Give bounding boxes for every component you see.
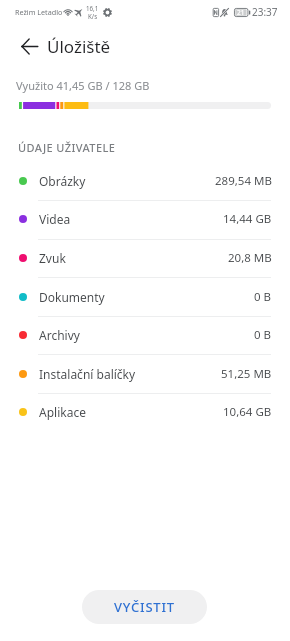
button[interactable]: Aplikace: [0, 392, 290, 431]
button[interactable]: Instalační balíčky: [0, 354, 290, 393]
button[interactable]: VYČISTIT: [82, 590, 207, 624]
staticText: Využito 41,45 GB / 128 GB: [16, 78, 150, 93]
staticText: Obrázky: [39, 173, 86, 189]
staticText: 289,54 MB: [215, 173, 272, 189]
button[interactable]: Videa: [0, 199, 290, 238]
staticText: K/s: [88, 12, 98, 20]
staticText: ÚDAJE UŽIVATELE: [18, 140, 116, 155]
staticText: Archivy: [39, 327, 80, 343]
staticText: Instalační balíčky: [39, 366, 136, 382]
staticText: 20,8 MB: [228, 250, 272, 266]
button[interactable]: Dokumenty: [0, 277, 290, 316]
staticText: Aplikace: [39, 404, 86, 420]
staticText: Dokumenty: [39, 289, 105, 305]
button[interactable]: Back: [17, 34, 41, 58]
staticText: Úložiště: [47, 35, 111, 58]
button[interactable]: Archivy: [0, 315, 290, 354]
staticText: 0 B: [254, 289, 272, 305]
staticText: 10,64 GB: [223, 404, 272, 420]
staticText: Zvuk: [39, 250, 66, 266]
staticText: 51,25 MB: [221, 366, 272, 382]
button[interactable]: Obrázky: [0, 161, 290, 200]
staticText: 14,44 GB: [223, 211, 272, 227]
staticText: VYČISTIT: [114, 598, 175, 616]
button[interactable]: Zvuk: [0, 238, 290, 277]
staticText: 16,1: [86, 4, 99, 12]
staticText: Režim Letadlo: [15, 7, 63, 17]
staticText: 0 B: [254, 327, 272, 343]
staticText: 21: [237, 8, 245, 17]
staticText: Videa: [39, 211, 71, 227]
staticText: 23:37: [252, 5, 278, 19]
